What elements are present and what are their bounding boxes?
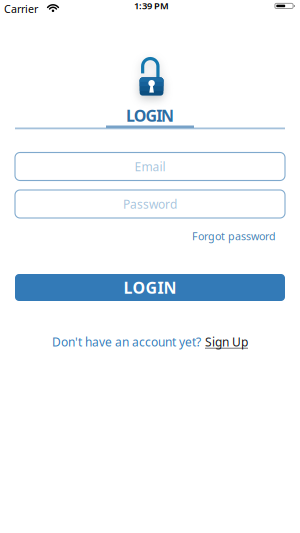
button[interactable]: Forgot password [192,229,276,243]
button[interactable]: Sign Up [205,334,248,350]
staticText: Password [123,196,177,212]
staticText: Email [134,158,165,174]
staticText: 1:39 PM [134,0,169,12]
staticText: Sign Up [205,334,248,350]
button[interactable]: Password [15,190,285,218]
button[interactable]: LOGIN [15,274,285,301]
staticText: Carrier [4,2,38,16]
staticText: Forgot password [192,229,276,243]
button[interactable]: Email [15,152,285,180]
staticText: LOGIN [123,277,176,298]
staticText: Don't have an account yet? [52,334,201,350]
staticText: LOGIN [126,105,174,126]
